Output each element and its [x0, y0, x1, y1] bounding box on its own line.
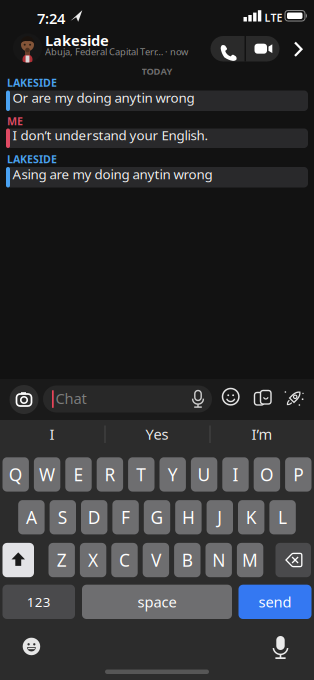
button[interactable]: P	[285, 457, 311, 492]
button[interactable]: Open conversation details	[289, 38, 307, 59]
button[interactable]: C	[111, 543, 138, 577]
button[interactable]: Camera	[9, 385, 38, 414]
button[interactable]: Yes	[107, 422, 207, 446]
button[interactable]: F	[112, 500, 139, 534]
staticText: Q	[9, 463, 23, 486]
staticText: O	[260, 463, 274, 486]
button[interactable]: H	[175, 500, 202, 534]
button[interactable]: D	[81, 500, 107, 534]
staticText: K	[246, 506, 257, 529]
button[interactable]: W	[34, 457, 60, 492]
button[interactable]: S	[50, 500, 76, 534]
staticText: A	[26, 506, 37, 529]
staticText: P	[293, 463, 303, 486]
button[interactable]: J	[207, 500, 233, 534]
button[interactable]: B	[174, 543, 200, 577]
staticText: Abuja, Federal Capital Terr… · now	[45, 45, 188, 58]
staticText: LTE	[264, 10, 282, 25]
staticText: LAKESIDE	[7, 75, 57, 90]
button[interactable]: A	[18, 500, 45, 534]
staticText: Chat	[55, 388, 86, 408]
staticText: TODAY	[141, 65, 172, 77]
staticText: Asing are my doing anytin wrong	[12, 165, 212, 183]
button[interactable]: Delete	[275, 543, 311, 577]
button[interactable]: U	[191, 457, 217, 492]
button[interactable]: I	[2, 422, 102, 446]
staticText: Lakeside	[45, 30, 109, 50]
staticText: ME	[7, 114, 23, 128]
staticText: send	[258, 592, 291, 612]
button[interactable]: L	[269, 500, 296, 534]
staticText: 123	[27, 593, 51, 611]
button[interactable]: Games	[282, 387, 304, 409]
staticText: W	[39, 463, 55, 486]
button[interactable]: Profile	[13, 33, 42, 62]
button[interactable]: N	[205, 543, 232, 577]
button[interactable]: M	[237, 543, 263, 577]
staticText: C	[119, 548, 130, 571]
staticText: I don’t understand your English.	[12, 126, 208, 144]
button[interactable]: 123	[2, 585, 75, 619]
button[interactable]: V	[143, 543, 169, 577]
button[interactable]: Stickers	[222, 388, 242, 408]
button[interactable]: I’m	[212, 422, 312, 446]
staticText: Yes	[145, 424, 168, 444]
button[interactable]: T	[128, 457, 154, 492]
button[interactable]: E	[65, 457, 92, 492]
staticText: LAKESIDE	[7, 152, 57, 166]
button[interactable]: Z	[48, 543, 75, 577]
button[interactable]: Memories	[253, 388, 273, 408]
staticText: R	[104, 463, 115, 486]
staticText: I	[232, 463, 238, 486]
staticText: L	[278, 506, 287, 529]
button[interactable]: X	[80, 543, 106, 577]
button[interactable]: K	[238, 500, 264, 534]
button[interactable]: Chat	[43, 385, 212, 412]
button[interactable]: Voice call	[210, 36, 244, 61]
staticText: F	[121, 506, 130, 529]
staticText: M	[242, 548, 258, 571]
staticText: I’m	[251, 424, 272, 444]
staticText: G	[150, 506, 163, 529]
staticText: B	[182, 548, 193, 571]
button[interactable]: R	[97, 457, 123, 492]
staticText: E	[73, 463, 83, 486]
staticText: V	[151, 548, 161, 571]
button[interactable]: Q	[2, 457, 29, 492]
button[interactable]: send	[238, 585, 311, 619]
staticText: N	[212, 548, 225, 571]
button[interactable]: Emoji	[23, 638, 40, 655]
staticText: Y	[168, 463, 178, 486]
staticText: space	[137, 592, 176, 612]
button[interactable]: space	[82, 585, 232, 619]
staticText: 7:24	[37, 8, 65, 28]
staticText: Or are my doing anytin wrong	[12, 89, 194, 106]
button[interactable]: Dictation	[271, 636, 290, 659]
staticText: I	[49, 424, 54, 444]
button[interactable]: G	[144, 500, 170, 534]
button[interactable]: Video call	[246, 36, 279, 61]
staticText: X	[88, 548, 98, 571]
button[interactable]: Shift	[2, 543, 34, 577]
staticText: T	[136, 463, 146, 486]
staticText: H	[182, 506, 195, 529]
staticText: Z	[57, 548, 67, 571]
staticText: J	[217, 506, 222, 529]
button[interactable]: I	[222, 457, 249, 492]
staticText: S	[58, 506, 68, 529]
staticText: D	[88, 506, 101, 529]
button[interactable]: O	[254, 457, 280, 492]
staticText: U	[198, 463, 211, 486]
button[interactable]: Y	[159, 457, 186, 492]
